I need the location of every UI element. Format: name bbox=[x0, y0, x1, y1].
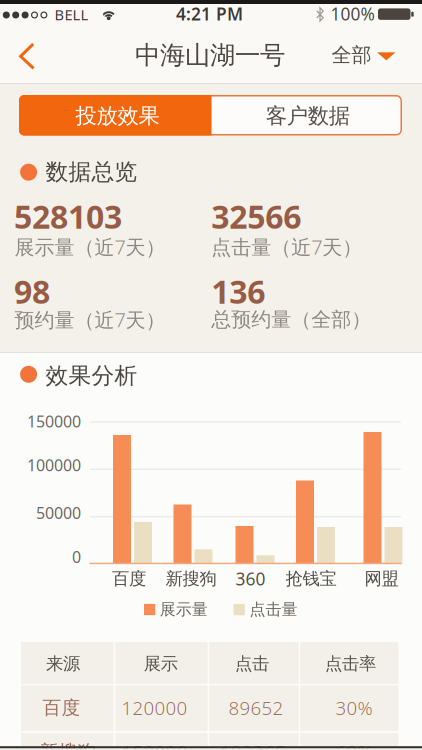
staticText: 来源 bbox=[46, 653, 80, 674]
staticText: 投放效果 bbox=[75, 103, 159, 129]
button[interactable]: 客户数据 bbox=[0, 0, 422, 750]
staticText: 120000 bbox=[121, 695, 187, 720]
staticText: 抢钱宝 bbox=[285, 568, 336, 589]
staticText: 新搜狗 bbox=[39, 740, 96, 750]
staticText: 150000 bbox=[27, 411, 81, 432]
staticText: 点击量（近7天） bbox=[211, 233, 362, 260]
staticText: 89652 bbox=[228, 695, 283, 720]
staticText: 32566 bbox=[211, 195, 301, 238]
staticText: 30% bbox=[335, 695, 372, 720]
staticText: 4:21 PM bbox=[176, 2, 243, 25]
staticText: 点击 bbox=[235, 653, 269, 674]
staticText: 点击量 bbox=[249, 600, 297, 619]
button[interactable]: 投放效果 bbox=[0, 0, 422, 750]
staticText: 预约量（近7天） bbox=[14, 306, 165, 333]
button[interactable]: Back bbox=[0, 0, 44, 56]
staticText: 展示 bbox=[144, 653, 178, 674]
staticText: 68% bbox=[335, 739, 372, 750]
staticText: 数据总览 bbox=[45, 158, 137, 186]
staticText: 0 bbox=[72, 546, 81, 567]
staticText: 网盟 bbox=[365, 568, 399, 589]
staticText: 136 bbox=[211, 270, 265, 313]
staticText: 百度 bbox=[112, 568, 146, 589]
staticText: 总预约量（全部） bbox=[211, 307, 371, 332]
staticText: BELL bbox=[54, 5, 88, 24]
staticText: 100000 bbox=[27, 454, 81, 476]
staticText: 528103 bbox=[14, 195, 122, 238]
staticText: 点击率 bbox=[325, 653, 376, 674]
staticText: 100% bbox=[330, 2, 374, 25]
staticText: 新搜狗 bbox=[165, 568, 216, 589]
staticText: 360 bbox=[235, 567, 265, 590]
staticText: 98 bbox=[14, 270, 50, 313]
staticText: 展示量（近7天） bbox=[14, 233, 165, 260]
staticText: 50000 bbox=[36, 502, 81, 523]
staticText: 中海山湖一号 bbox=[135, 40, 285, 71]
staticText: 102365 bbox=[220, 739, 286, 750]
staticText: 全部 bbox=[331, 43, 371, 67]
staticText: 客户数据 bbox=[266, 103, 350, 129]
staticText: 效果分析 bbox=[45, 362, 137, 390]
staticText: 百度 bbox=[42, 696, 80, 719]
button[interactable]: 全部 bbox=[0, 0, 422, 750]
staticText: 展示量 bbox=[160, 600, 208, 619]
staticText: 150000 bbox=[121, 739, 187, 750]
